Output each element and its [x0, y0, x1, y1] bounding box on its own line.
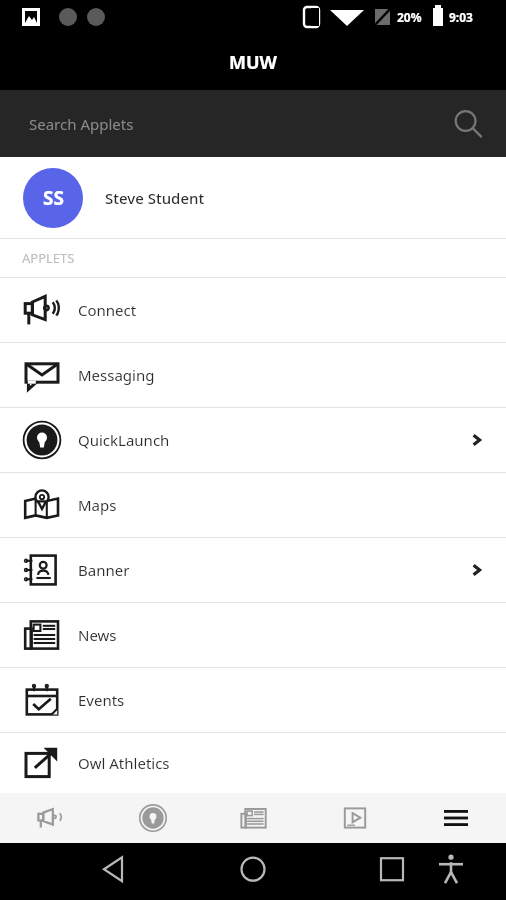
button[interactable]: QuickLaunch: [0, 408, 506, 472]
button[interactable]: News: [203, 793, 304, 843]
staticText: MUW: [229, 50, 277, 75]
staticText: 20%: [397, 9, 422, 25]
staticText: QuickLaunch: [78, 430, 170, 450]
button[interactable]: Media: [304, 793, 405, 843]
button[interactable]: Search Applets: [0, 90, 506, 157]
button[interactable]: Banner: [0, 538, 506, 602]
staticText: Steve Student: [105, 188, 205, 208]
staticText: News: [78, 625, 117, 645]
button[interactable]: Menu: [405, 793, 506, 843]
button[interactable]: Owl Athletics: [0, 733, 506, 793]
staticText: APPLETS: [22, 249, 75, 267]
staticText: Connect: [78, 300, 137, 320]
button[interactable]: Connect: [0, 278, 506, 342]
button[interactable]: QuickLaunch: [102, 793, 203, 843]
staticText: 9:03: [449, 9, 473, 25]
staticText: SS: [43, 185, 64, 211]
staticText: Banner: [78, 560, 130, 580]
button[interactable]: News: [0, 603, 506, 667]
button[interactable]: SS: [0, 157, 506, 238]
button[interactable]: Messaging: [0, 343, 506, 407]
button[interactable]: Search: [446, 102, 490, 146]
staticText: Search Applets: [29, 114, 134, 134]
staticText: Messaging: [78, 365, 155, 385]
button[interactable]: Connect: [0, 793, 102, 843]
staticText: Maps: [78, 495, 117, 515]
button[interactable]: Events: [0, 668, 506, 732]
button[interactable]: Maps: [0, 473, 506, 537]
staticText: Events: [78, 690, 125, 710]
staticText: Owl Athletics: [78, 753, 170, 773]
